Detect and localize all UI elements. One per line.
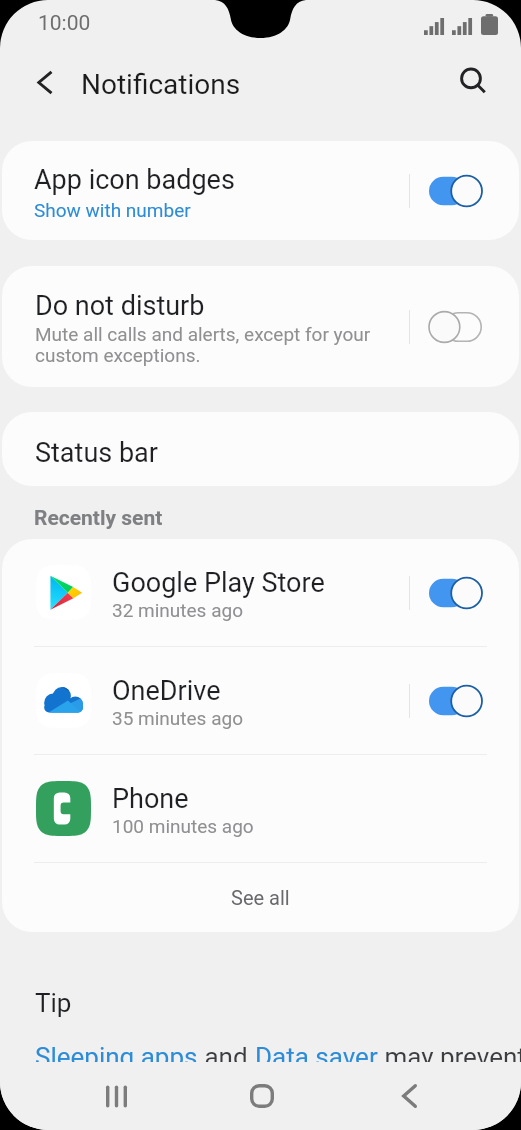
button[interactable]: Navigate up bbox=[19, 56, 71, 108]
staticText: Show with number bbox=[34, 199, 191, 221]
staticText: Status bar bbox=[35, 437, 158, 469]
staticText: 100 minutes ago bbox=[112, 815, 254, 837]
button[interactable]: OneDrive bbox=[2, 647, 519, 754]
staticText: Do not disturb bbox=[35, 290, 205, 322]
staticText: and bbox=[198, 1042, 255, 1072]
button[interactable]: Switch off bbox=[429, 304, 482, 350]
button[interactable]: See all bbox=[2, 863, 519, 932]
staticText: App icon badges bbox=[34, 164, 235, 196]
button[interactable]: Home bbox=[233, 1067, 291, 1125]
staticText: Tip bbox=[35, 988, 72, 1018]
button[interactable]: Phone bbox=[2, 755, 519, 862]
staticText: Data saver bbox=[255, 1042, 378, 1072]
button[interactable]: Google Play Store bbox=[2, 539, 519, 646]
staticText: Sleeping apps bbox=[35, 1042, 198, 1072]
button[interactable]: Switch on bbox=[429, 168, 482, 214]
button[interactable]: Back bbox=[380, 1067, 438, 1125]
staticText: may prevent bbox=[378, 1042, 521, 1072]
button[interactable]: Search bbox=[447, 56, 499, 108]
staticText: 35 minutes ago bbox=[112, 707, 243, 729]
staticText: Mute all calls and alerts, except for yo… bbox=[35, 323, 399, 366]
staticText: See all bbox=[231, 886, 290, 909]
staticText: Notifications bbox=[81, 68, 241, 101]
button[interactable]: Recent apps bbox=[87, 1067, 145, 1125]
staticText: Phone bbox=[112, 783, 189, 815]
staticText: Recently sent bbox=[34, 506, 163, 531]
button[interactable]: Switch on bbox=[429, 570, 482, 616]
staticText: OneDrive bbox=[112, 675, 221, 707]
staticText: 10:00 bbox=[38, 11, 91, 36]
staticText: Google Play Store bbox=[112, 567, 325, 599]
staticText: 32 minutes ago bbox=[112, 599, 243, 621]
button[interactable]: Switch on bbox=[429, 678, 482, 724]
